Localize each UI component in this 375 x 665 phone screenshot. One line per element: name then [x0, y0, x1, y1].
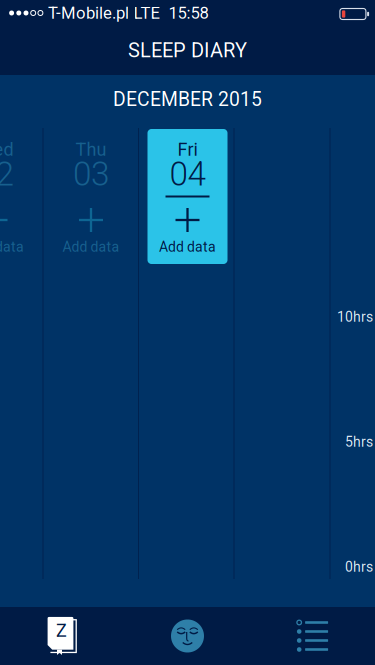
- staticText: Z: [56, 620, 67, 641]
- button[interactable]: Wed: [0, 129, 35, 264]
- staticText: 15:58: [168, 3, 208, 23]
- staticText: Add data: [159, 239, 216, 255]
- staticText: Wed: [0, 139, 13, 160]
- staticText: Thu: [75, 139, 106, 160]
- staticText: LTE: [133, 3, 159, 23]
- staticText: DECEMBER 2015: [113, 88, 262, 111]
- button[interactable]: Statistics: [250, 607, 375, 665]
- staticText: 10hrs: [337, 309, 373, 325]
- staticText: 03: [73, 154, 109, 194]
- staticText: Fri: [177, 139, 197, 160]
- staticText: Add data: [62, 239, 119, 255]
- button[interactable]: Sleep diary: [0, 605, 123, 663]
- button[interactable]: Sleep: [125, 607, 250, 665]
- button[interactable]: Fri: [147, 129, 227, 264]
- button[interactable]: Thu: [51, 129, 131, 264]
- staticText: T-Mobile.pl: [48, 3, 129, 23]
- staticText: 02: [0, 154, 13, 194]
- staticText: 0hrs: [345, 559, 373, 575]
- staticText: 5hrs: [345, 434, 373, 450]
- staticText: 04: [169, 154, 205, 194]
- staticText: Add data: [0, 239, 24, 255]
- staticText: SLEEP DIARY: [128, 39, 247, 62]
